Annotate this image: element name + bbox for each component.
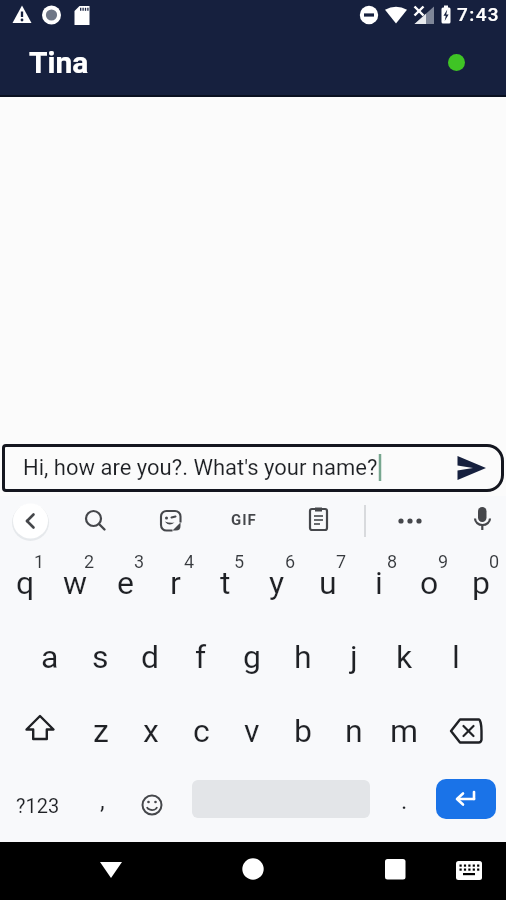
button[interactable] — [232, 850, 274, 892]
staticText: ?123 — [16, 794, 60, 817]
button[interactable] — [448, 850, 490, 892]
staticText: 6 — [285, 551, 296, 572]
button[interactable]: k — [379, 620, 430, 694]
staticText: z — [93, 712, 109, 750]
button[interactable]: e — [100, 546, 150, 620]
staticText: w — [63, 564, 88, 602]
button[interactable]: , — [76, 768, 128, 842]
staticText: k — [396, 638, 413, 676]
staticText: j — [350, 638, 358, 676]
staticText: r — [170, 564, 181, 602]
button[interactable]: . — [380, 768, 428, 842]
staticText: d — [141, 638, 160, 676]
button[interactable]: v — [226, 694, 277, 768]
staticText: g — [243, 638, 261, 676]
button[interactable]: h — [277, 620, 328, 694]
staticText: n — [345, 712, 363, 750]
staticText: 7:43 — [457, 3, 501, 25]
staticText: h — [294, 638, 312, 676]
button[interactable]: z — [76, 694, 126, 768]
button[interactable]: p — [455, 546, 506, 620]
staticText: 4 — [184, 551, 195, 572]
staticText: 1 — [34, 551, 45, 572]
button[interactable]: x — [126, 694, 176, 768]
staticText: 3 — [134, 551, 145, 572]
staticText: 9 — [438, 551, 449, 572]
staticText: e — [117, 564, 134, 602]
button[interactable]: s — [75, 620, 125, 694]
staticText: a — [41, 638, 59, 676]
button[interactable]: o — [404, 546, 455, 620]
staticText: x — [143, 712, 159, 750]
button[interactable]: c — [176, 694, 226, 768]
staticText: v — [244, 712, 260, 750]
staticText: u — [319, 564, 337, 602]
button[interactable]: Tina — [0, 28, 506, 97]
button[interactable]: n — [328, 694, 379, 768]
button[interactable] — [436, 779, 496, 819]
button[interactable] — [90, 850, 132, 892]
button[interactable]: t — [200, 546, 251, 620]
staticText: Hi, how are you?. What's your name? — [23, 455, 378, 481]
button[interactable]: r — [150, 546, 200, 620]
button[interactable]: d — [125, 620, 175, 694]
button[interactable]: i — [353, 546, 404, 620]
button[interactable]: b — [277, 694, 328, 768]
button[interactable]: Hi, how are you?. What's your name? — [2, 444, 504, 492]
staticText: t — [220, 564, 231, 602]
button[interactable] — [128, 768, 176, 842]
staticText: p — [472, 564, 490, 602]
staticText: c — [193, 712, 210, 750]
staticText: l — [452, 638, 460, 676]
button[interactable]: ?123 — [0, 768, 76, 842]
button[interactable]: f — [175, 620, 226, 694]
button[interactable] — [430, 694, 506, 768]
staticText: f — [195, 638, 207, 676]
button[interactable] — [374, 850, 416, 892]
staticText: 8 — [387, 551, 398, 572]
button[interactable]: q — [0, 546, 50, 620]
staticText: m — [390, 712, 419, 750]
staticText: i — [375, 564, 383, 602]
button[interactable]: m — [379, 694, 430, 768]
button[interactable]: g — [226, 620, 277, 694]
staticText: q — [16, 564, 35, 602]
staticText: o — [420, 564, 439, 602]
staticText: s — [92, 638, 109, 676]
staticText: b — [294, 712, 312, 750]
button[interactable]: w — [50, 546, 100, 620]
button[interactable]: u — [302, 546, 353, 620]
button[interactable]: j — [328, 620, 379, 694]
staticText: 0 — [489, 551, 500, 572]
staticText: Tina — [29, 45, 89, 80]
button[interactable]: a — [25, 620, 75, 694]
button[interactable]: y — [251, 546, 302, 620]
staticText: , — [100, 787, 105, 815]
staticText: GIF — [231, 511, 257, 529]
staticText: y — [269, 564, 285, 602]
button[interactable]: l — [430, 620, 481, 694]
staticText: . — [401, 787, 408, 815]
button[interactable] — [0, 694, 76, 768]
staticText: 2 — [84, 551, 95, 572]
staticText: 5 — [234, 551, 245, 572]
staticText: 7 — [336, 551, 347, 572]
